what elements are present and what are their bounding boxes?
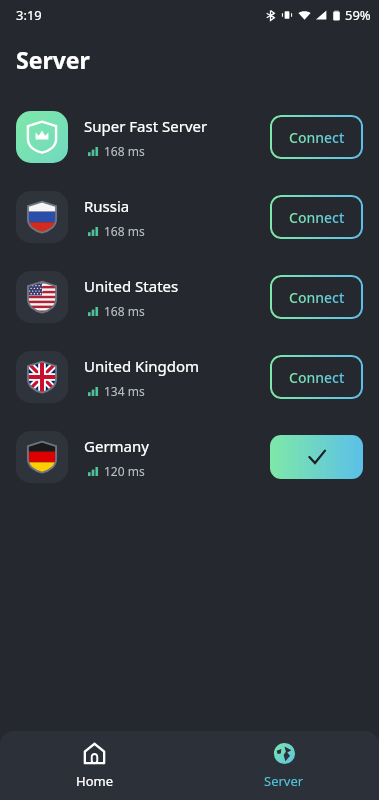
staticText: Germany <box>84 436 149 456</box>
button[interactable]: Connect <box>270 275 363 319</box>
button[interactable]: Connect <box>270 195 363 239</box>
staticText: 168 ms <box>104 303 145 319</box>
staticText: United Kingdom <box>84 356 200 376</box>
staticText: 120 ms <box>104 463 145 479</box>
staticText: Server <box>16 44 90 75</box>
staticText: Russia <box>84 196 130 216</box>
staticText: 168 ms <box>104 143 145 159</box>
staticText: United States <box>84 276 179 296</box>
staticText: Connect <box>289 368 345 387</box>
staticText: Server <box>264 772 304 790</box>
staticText: Connect <box>289 128 345 147</box>
button[interactable]: Home <box>0 731 189 800</box>
button[interactable]: Connect <box>270 115 363 159</box>
staticText: Home <box>76 772 113 790</box>
staticText: 59% <box>345 6 371 24</box>
button[interactable]: Server <box>189 731 379 800</box>
staticText: Super Fast Server <box>84 116 208 136</box>
staticText: 168 ms <box>104 223 145 239</box>
staticText: 3:19 <box>16 6 42 24</box>
button[interactable]: Super Fast Server <box>0 97 379 177</box>
button[interactable]: United States <box>0 257 379 337</box>
button[interactable]: Connected <box>270 435 363 479</box>
button[interactable]: United Kingdom <box>0 337 379 417</box>
staticText: Connect <box>289 208 345 227</box>
button[interactable]: Germany <box>0 417 379 497</box>
staticText: 134 ms <box>104 383 145 399</box>
button[interactable]: Connect <box>270 355 363 399</box>
button[interactable]: Russia <box>0 177 379 257</box>
staticText: Connect <box>289 288 345 307</box>
